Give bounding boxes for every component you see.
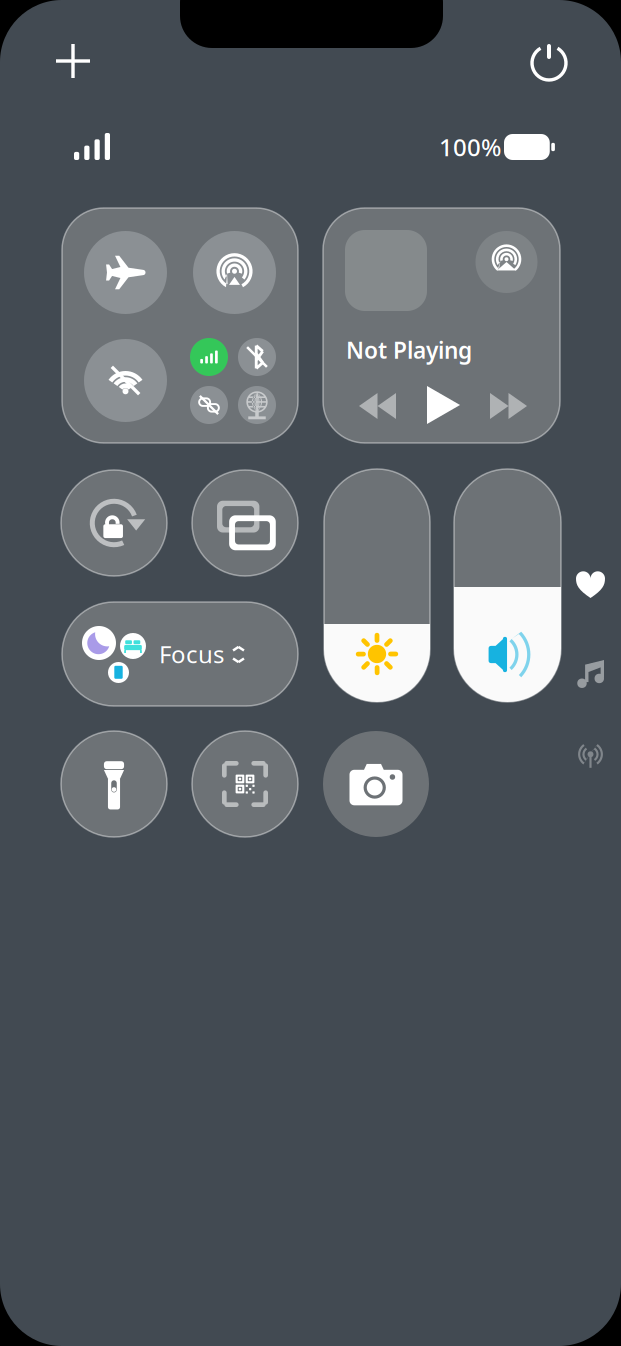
button[interactable]: AirPlay [475,231,538,293]
staticText: Focus [159,638,224,670]
button[interactable]: Power [530,42,568,80]
button[interactable]: Play [427,386,460,424]
button[interactable]: Connectivity [577,742,604,772]
button[interactable]: Personal Hotspot [190,386,228,424]
button[interactable]: Focus [62,602,298,706]
button[interactable]: Brightness [324,469,430,702]
button[interactable]: Flashlight [61,731,167,837]
button[interactable]: AirDrop [193,231,276,314]
button[interactable]: Favorites [576,571,605,598]
button[interactable]: Camera [323,731,429,837]
button[interactable]: Cellular Data [190,338,228,376]
button[interactable]: Volume [454,469,561,702]
button[interactable]: Now Playing [577,660,604,690]
button[interactable]: Rotation Lock [61,470,167,576]
button[interactable]: Previous [359,393,396,419]
button[interactable]: Bluetooth [238,338,276,376]
button[interactable]: Next [490,393,527,419]
button[interactable]: VPN [238,386,276,424]
staticText: 100% [439,131,501,163]
button[interactable]: Wi-Fi [84,339,167,422]
button[interactable]: Screen Mirroring [192,470,298,576]
button[interactable]: Airplane Mode [84,231,167,314]
staticText: Not Playing [346,335,472,365]
button[interactable]: Add control [56,44,90,78]
button[interactable]: Code Scanner [192,731,298,837]
